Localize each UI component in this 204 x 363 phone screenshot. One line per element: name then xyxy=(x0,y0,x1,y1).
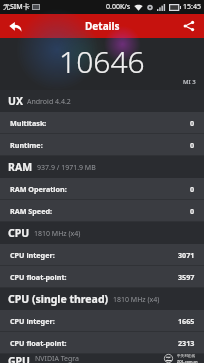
staticText: 0.00K/s xyxy=(106,2,131,12)
button[interactable]: CPU float-point: xyxy=(0,332,204,354)
staticText: 1665 xyxy=(178,316,195,326)
button[interactable]: CPU integer: xyxy=(0,244,204,266)
staticText: 1810 MHz (x4) xyxy=(113,295,160,305)
staticText: 937.9 / 1971.9 MB xyxy=(37,163,96,173)
staticText: NVIDIA Tegra xyxy=(35,354,80,363)
staticText: Runtime: xyxy=(10,140,43,150)
staticText: 0 xyxy=(190,184,195,194)
staticText: RAM Speed: xyxy=(10,206,52,216)
staticText: CPU integer: xyxy=(10,316,55,326)
staticText: Android 4.4.2 xyxy=(27,97,71,107)
staticText: GPU xyxy=(8,354,31,363)
button[interactable]: RAM Operation: xyxy=(0,178,204,200)
staticText: MI 3 xyxy=(183,78,196,86)
staticText: 0 xyxy=(190,118,195,128)
button[interactable]: Multitask: xyxy=(0,112,204,134)
staticText: 无SIM卡 xyxy=(3,2,30,12)
button[interactable]: RAM Speed: xyxy=(0,200,204,222)
staticText: 中关村在线 xyxy=(177,354,195,359)
button[interactable]: CPU integer: xyxy=(0,310,204,332)
staticText: 3071 xyxy=(178,250,195,260)
button[interactable]: Runtime: xyxy=(0,134,204,156)
staticText: Details xyxy=(85,19,120,33)
staticText: 1810 MHz (x4) xyxy=(34,229,81,239)
staticText: 0 xyxy=(190,206,195,216)
staticText: 10646 xyxy=(59,41,145,82)
staticText: 15:45 xyxy=(183,2,201,12)
button[interactable]: CPU float-point: xyxy=(0,266,204,288)
button[interactable]: Back xyxy=(0,14,30,38)
staticText: ZOL.com.cn xyxy=(177,359,198,363)
staticText: CPU xyxy=(8,226,30,240)
staticText: CPU integer: xyxy=(10,250,55,260)
button[interactable]: Share xyxy=(174,14,204,38)
staticText: CPU float-point: xyxy=(10,338,67,348)
staticText: RAM Operation: xyxy=(10,184,67,194)
staticText: UX xyxy=(8,94,23,108)
staticText: CPU float-point: xyxy=(10,272,67,282)
staticText: 3597 xyxy=(178,272,195,282)
staticText: 0 xyxy=(190,140,195,150)
staticText: CPU (single thread) xyxy=(8,292,109,306)
staticText: Multitask: xyxy=(10,118,47,128)
staticText: 2313 xyxy=(178,338,195,348)
staticText: RAM xyxy=(8,160,33,174)
